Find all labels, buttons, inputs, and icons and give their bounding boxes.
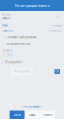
button[interactable]: Информация [56, 14, 60, 18]
staticText: Телефон [2, 49, 13, 52]
button[interactable]: Я не робот [11, 67, 33, 75]
staticText: +7 900 [2, 54, 13, 57]
staticText: не менее 8 [48, 29, 62, 32]
staticText: Регистрация нового [14, 3, 49, 8]
staticText: Логин [2, 13, 11, 16]
staticText: Я не робот [5, 60, 21, 64]
button[interactable]: ОК [54, 69, 60, 74]
staticText: Показать [52, 24, 62, 27]
button[interactable]: Я не робот [0, 59, 64, 65]
staticText: Согласен с условиями [5, 35, 36, 39]
staticText: Получать новости [5, 42, 30, 45]
staticText: Email [2, 24, 8, 27]
button[interactable]: Далее [9, 110, 24, 119]
staticText: ivanov [2, 16, 10, 20]
staticText: Я не робот [14, 70, 30, 73]
staticText: Далее [13, 113, 20, 116]
button[interactable]: Согласен с условиями [0, 34, 64, 40]
staticText: Назад [28, 113, 35, 116]
staticText: ОК [55, 70, 59, 73]
button[interactable]: Уже есть аккаунт? [0, 102, 64, 110]
button[interactable]: Получать новости [0, 40, 64, 47]
button[interactable]: Назад [25, 110, 39, 119]
staticText: Пароль [2, 29, 12, 32]
staticText: Отмена [42, 113, 51, 116]
button[interactable]: Отмена [39, 110, 54, 119]
staticText: Уже есть аккаунт? [22, 105, 42, 108]
